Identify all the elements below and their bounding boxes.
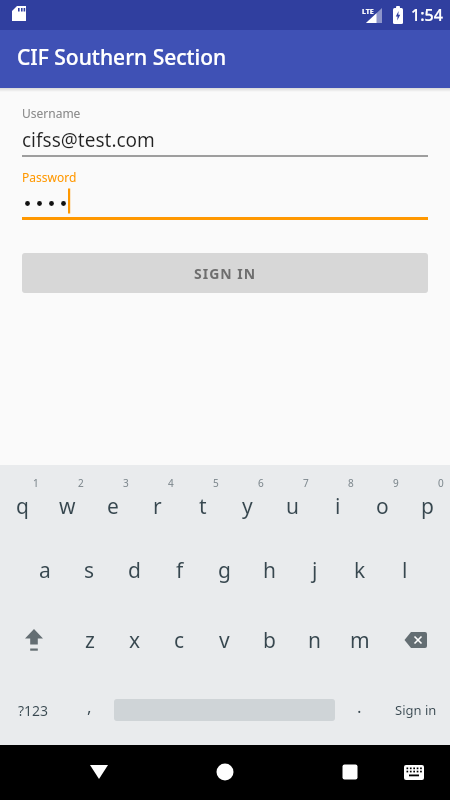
staticText: e: [107, 492, 119, 521]
staticText: j: [312, 556, 318, 585]
staticText: 5: [213, 476, 219, 490]
staticText: 1:54: [411, 4, 443, 26]
button[interactable]: n: [292, 605, 337, 675]
button[interactable]: k: [337, 535, 382, 605]
button[interactable]: [0, 605, 67, 675]
staticText: w: [59, 492, 76, 521]
staticText: Username: [22, 105, 81, 121]
button[interactable]: b: [247, 605, 292, 675]
button[interactable]: a: [23, 535, 67, 605]
button[interactable]: 6: [225, 465, 270, 535]
staticText: SIGN IN: [194, 264, 257, 283]
staticText: s: [84, 556, 95, 585]
button[interactable]: ?123: [0, 675, 67, 745]
button[interactable]: [382, 605, 450, 675]
button[interactable]: c: [157, 605, 202, 675]
staticText: LTE: [362, 7, 374, 17]
button[interactable]: ,: [67, 675, 112, 745]
button[interactable]: 8: [315, 465, 360, 535]
button[interactable]: 4: [135, 465, 180, 535]
staticText: Password: [22, 169, 77, 185]
button[interactable]: [0, 745, 150, 800]
button[interactable]: 9: [360, 465, 405, 535]
staticText: q: [16, 492, 29, 521]
button[interactable]: h: [247, 535, 292, 605]
staticText: m: [350, 626, 370, 655]
button[interactable]: v: [202, 605, 247, 675]
staticText: Sign in: [395, 701, 437, 719]
button[interactable]: 7: [270, 465, 315, 535]
staticText: 3: [123, 476, 129, 490]
button[interactable]: [112, 675, 337, 745]
button[interactable]: m: [337, 605, 382, 675]
button[interactable]: 0: [405, 465, 450, 535]
staticText: b: [263, 626, 276, 655]
staticText: k: [354, 556, 366, 585]
button[interactable]: j: [292, 535, 337, 605]
button[interactable]: l: [382, 535, 427, 605]
staticText: 2: [78, 476, 84, 490]
button[interactable]: 5: [180, 465, 225, 535]
button[interactable]: cifss@test.com: [22, 127, 155, 153]
button[interactable]: [22, 188, 428, 214]
button[interactable]: g: [202, 535, 247, 605]
staticText: z: [85, 626, 95, 655]
staticText: 0: [438, 476, 444, 490]
staticText: y: [242, 492, 253, 521]
button[interactable]: 2: [45, 465, 90, 535]
staticText: h: [263, 556, 276, 585]
staticText: o: [376, 492, 389, 521]
staticText: n: [308, 626, 321, 655]
button[interactable]: SIGN IN: [22, 253, 428, 293]
staticText: p: [421, 492, 434, 521]
button[interactable]: 1: [0, 465, 45, 535]
button[interactable]: .: [337, 675, 382, 745]
button[interactable]: f: [157, 535, 202, 605]
button[interactable]: x: [112, 605, 157, 675]
staticText: f: [176, 556, 184, 585]
staticText: l: [402, 556, 408, 585]
staticText: i: [335, 492, 341, 521]
staticText: a: [39, 556, 51, 585]
button[interactable]: z: [67, 605, 112, 675]
staticText: 7: [303, 476, 309, 490]
button[interactable]: s: [67, 535, 112, 605]
staticText: d: [128, 556, 141, 585]
staticText: x: [129, 626, 141, 655]
staticText: 4: [168, 476, 174, 490]
staticText: g: [218, 556, 231, 585]
staticText: c: [174, 626, 185, 655]
button[interactable]: 3: [90, 465, 135, 535]
staticText: v: [219, 626, 230, 655]
staticText: 6: [258, 476, 264, 490]
button[interactable]: d: [112, 535, 157, 605]
staticText: u: [286, 492, 299, 521]
staticText: 9: [393, 476, 399, 490]
staticText: ,: [87, 695, 92, 718]
button[interactable]: [300, 745, 450, 800]
button[interactable]: [150, 745, 300, 800]
staticText: r: [153, 492, 162, 521]
staticText: CIF Southern Section: [17, 43, 227, 72]
staticText: t: [199, 492, 207, 521]
staticText: .: [357, 695, 362, 718]
button[interactable]: Sign in: [382, 675, 450, 745]
staticText: 8: [348, 476, 354, 490]
staticText: ?123: [18, 701, 49, 720]
staticText: 1: [33, 476, 39, 490]
